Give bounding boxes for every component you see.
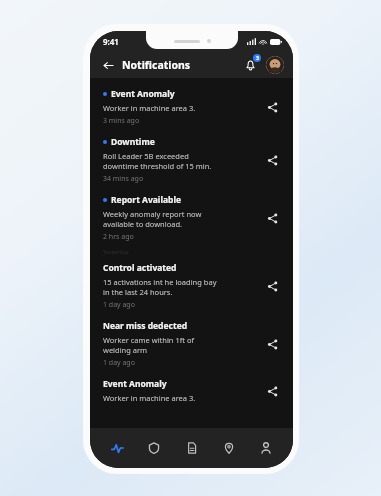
staticText: Near miss dedected (103, 320, 188, 332)
staticText: Downtime (111, 136, 155, 148)
button[interactable]: Reports (179, 437, 205, 459)
staticText: 2 hrs ago (103, 232, 134, 242)
button[interactable]: Profile (253, 437, 279, 459)
staticText: Event Anomaly (103, 378, 167, 390)
staticText: in the last 24 hours. (103, 287, 173, 297)
button[interactable]: Notifications (240, 55, 260, 75)
button[interactable]: Share (262, 276, 282, 296)
staticText: Report Available (111, 194, 182, 206)
button[interactable]: Share (262, 381, 282, 401)
button[interactable]: Share (262, 97, 282, 117)
button[interactable]: Event Anomaly (90, 373, 293, 408)
button[interactable]: Profile (266, 56, 284, 74)
staticText: Worker in machine area 3. (103, 393, 196, 403)
button[interactable]: Locations (216, 437, 242, 459)
staticText: Yesterday (103, 248, 129, 255)
staticText: Notifications (122, 58, 191, 72)
staticText: Weekly anomaly report now (103, 209, 202, 219)
button[interactable]: Safety (141, 437, 167, 459)
staticText: welding arm (103, 345, 148, 355)
staticText: 15 activations int he loading bay (103, 277, 217, 287)
staticText: available to download. (103, 219, 183, 229)
button[interactable]: Control activated (90, 257, 293, 315)
button[interactable]: Share (262, 150, 282, 170)
button[interactable]: Near miss dedected (90, 315, 293, 373)
button[interactable]: Event Anomaly (90, 83, 293, 131)
staticText: Worker came within 1ft of (103, 335, 195, 345)
staticText: 3 mins ago (103, 116, 140, 126)
button[interactable]: Share (262, 208, 282, 228)
button[interactable]: Report Available (90, 189, 293, 247)
staticText: Worker in machine area 3. (103, 103, 196, 113)
button[interactable]: Back (99, 56, 117, 74)
staticText: Roll Leader 5B exceeded (103, 151, 189, 161)
staticText: 34 mins ago (103, 174, 144, 184)
staticText: downtime threshold of 15 min. (103, 161, 212, 171)
staticText: Control activated (103, 262, 177, 274)
staticText: 1 day ago (103, 300, 135, 310)
staticText: 3 (256, 55, 259, 62)
staticText: 9:41 (103, 36, 119, 47)
button[interactable]: Share (262, 334, 282, 354)
button[interactable]: Downtime (90, 131, 293, 189)
button[interactable]: Activity (104, 437, 130, 459)
staticText: Event Anomaly (111, 88, 175, 100)
staticText: 1 day ago (103, 358, 135, 368)
